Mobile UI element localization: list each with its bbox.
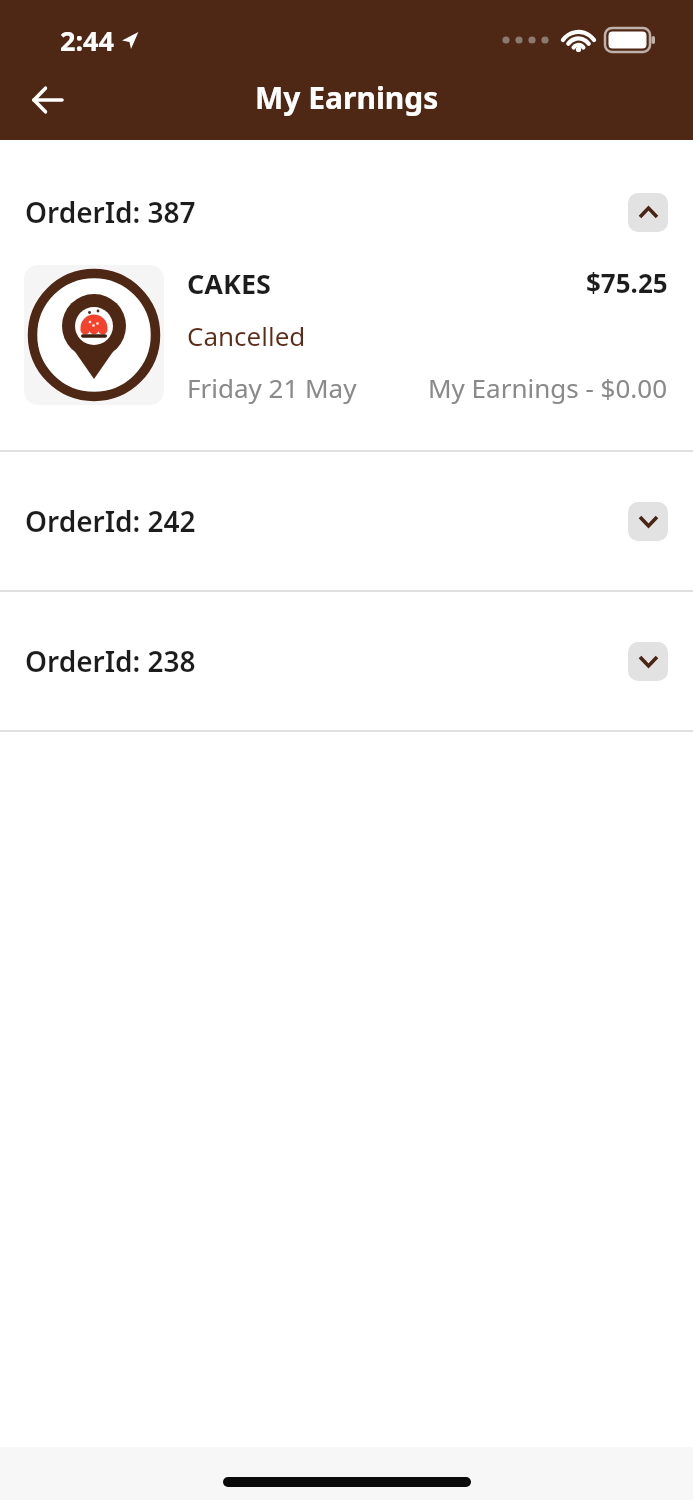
staticText: My Earnings - $0.00 [428, 370, 668, 405]
staticText: Friday 21 May [187, 370, 357, 405]
button[interactable] [628, 642, 668, 681]
staticText: $75.25 [586, 265, 668, 300]
staticText: Cancelled [187, 318, 306, 353]
staticText: My Earnings [255, 77, 439, 118]
button[interactable]: OrderId: 387 [25, 180, 668, 244]
staticText: OrderId: 387 [25, 193, 196, 231]
button[interactable] [628, 502, 668, 541]
button[interactable]: OrderId: 238 [25, 592, 668, 730]
button[interactable]: OrderId: 242 [25, 452, 668, 590]
staticText: OrderId: 242 [25, 502, 196, 540]
button[interactable] [24, 76, 72, 124]
staticText: CAKES [187, 265, 271, 302]
staticText: 2:44 [60, 22, 114, 58]
button[interactable] [628, 193, 668, 232]
staticText: OrderId: 238 [25, 642, 196, 680]
